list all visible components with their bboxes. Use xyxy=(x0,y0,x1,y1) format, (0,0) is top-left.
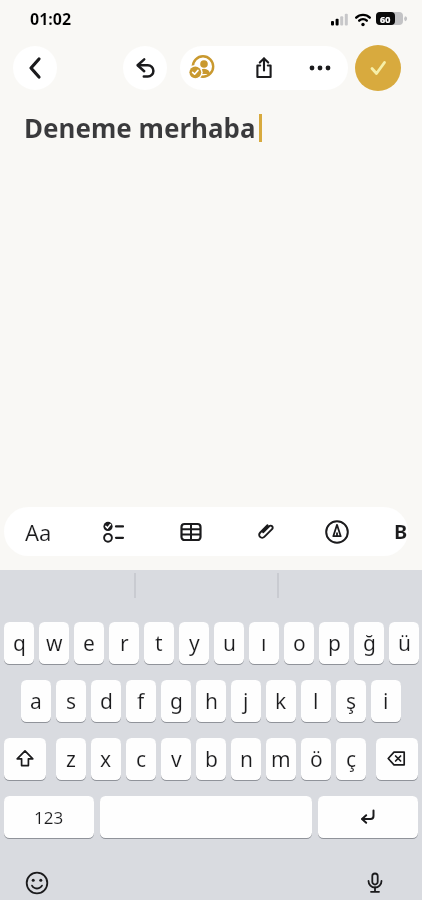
button[interactable]: x xyxy=(91,738,121,780)
button[interactable] xyxy=(90,507,138,556)
button[interactable] xyxy=(167,507,215,556)
button[interactable]: c xyxy=(126,738,156,780)
button[interactable] xyxy=(360,868,392,900)
button[interactable]: s xyxy=(56,680,86,722)
button[interactable]: a xyxy=(21,680,51,722)
staticText: ğ xyxy=(363,629,376,658)
button[interactable]: B xyxy=(394,507,408,556)
staticText: d xyxy=(100,687,113,716)
staticText: k xyxy=(275,687,287,716)
staticText: v xyxy=(171,745,182,774)
staticText: i xyxy=(383,687,389,716)
staticText: r xyxy=(120,629,129,658)
staticText: s xyxy=(66,687,77,716)
button[interactable]: p xyxy=(319,622,349,664)
button[interactable]: y xyxy=(179,622,209,664)
button[interactable] xyxy=(123,46,167,90)
button[interactable]: ş xyxy=(336,680,366,722)
button[interactable]: 123 xyxy=(4,796,94,838)
staticText: u xyxy=(223,629,236,658)
button[interactable]: i xyxy=(371,680,401,722)
staticText: j xyxy=(243,687,249,716)
button[interactable] xyxy=(355,45,401,91)
button[interactable]: b xyxy=(196,738,226,780)
button[interactable]: z xyxy=(56,738,86,780)
staticText: h xyxy=(205,687,218,716)
staticText: ş xyxy=(346,687,357,716)
staticText: m xyxy=(271,745,291,774)
button[interactable]: l xyxy=(301,680,331,722)
button[interactable] xyxy=(292,46,348,90)
staticText: b xyxy=(205,745,218,774)
staticText: z xyxy=(66,745,76,774)
button[interactable]: ç xyxy=(336,738,366,780)
button[interactable]: v xyxy=(161,738,191,780)
button[interactable] xyxy=(318,796,418,838)
staticText: f xyxy=(137,687,145,716)
staticText: Aa xyxy=(25,517,52,547)
staticText: 01:02 xyxy=(30,8,72,30)
button[interactable] xyxy=(376,738,418,780)
staticText: l xyxy=(313,687,319,716)
button[interactable]: m xyxy=(266,738,296,780)
button[interactable] xyxy=(13,46,57,90)
button[interactable]: r xyxy=(109,622,139,664)
staticText: e xyxy=(83,629,95,658)
button[interactable]: h xyxy=(196,680,226,722)
staticText: ı xyxy=(261,629,267,658)
button[interactable] xyxy=(313,507,361,556)
button[interactable] xyxy=(176,46,228,90)
staticText: B xyxy=(394,518,408,545)
button[interactable]: ö xyxy=(301,738,331,780)
button[interactable]: d xyxy=(91,680,121,722)
staticText: g xyxy=(170,687,183,716)
staticText: w xyxy=(46,629,63,658)
button[interactable]: f xyxy=(126,680,156,722)
button[interactable]: g xyxy=(161,680,191,722)
button[interactable]: q xyxy=(4,622,34,664)
button[interactable]: ğ xyxy=(354,622,384,664)
staticText: y xyxy=(189,629,200,658)
button[interactable]: o xyxy=(284,622,314,664)
staticText: t xyxy=(155,629,163,658)
button[interactable]: ü xyxy=(389,622,419,664)
staticText: Deneme merhaba xyxy=(24,110,256,145)
button[interactable]: n xyxy=(231,738,261,780)
button[interactable] xyxy=(22,868,54,900)
button[interactable]: e xyxy=(74,622,104,664)
button[interactable] xyxy=(236,46,292,90)
button[interactable]: ı xyxy=(249,622,279,664)
staticText: p xyxy=(328,629,341,658)
button[interactable] xyxy=(4,738,46,780)
staticText: n xyxy=(240,745,253,774)
button[interactable]: u xyxy=(214,622,244,664)
staticText: ç xyxy=(346,745,357,774)
staticText: o xyxy=(293,629,306,658)
staticText: ö xyxy=(310,745,323,774)
staticText: ü xyxy=(398,629,411,658)
button[interactable] xyxy=(241,507,289,556)
button[interactable]: w xyxy=(39,622,69,664)
staticText: c xyxy=(136,745,147,774)
staticText: x xyxy=(100,745,112,774)
button[interactable]: t xyxy=(144,622,174,664)
staticText: q xyxy=(13,629,26,658)
staticText: 60 xyxy=(380,13,391,25)
button[interactable]: k xyxy=(266,680,296,722)
staticText: 123 xyxy=(34,806,64,829)
staticText: a xyxy=(30,687,42,716)
button[interactable]: Aa xyxy=(14,507,62,556)
button[interactable]: j xyxy=(231,680,261,722)
